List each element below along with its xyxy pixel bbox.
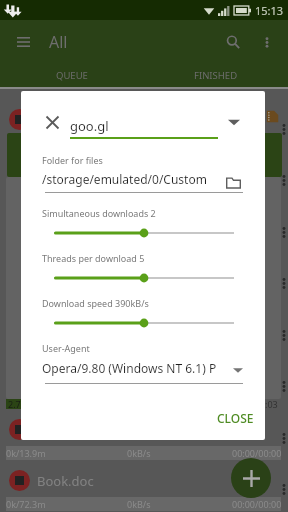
staticText: Download speed 390kB/s xyxy=(42,297,149,309)
staticText: QUEUE xyxy=(56,69,88,82)
button[interactable]: Stop download xyxy=(9,470,30,491)
button[interactable] xyxy=(54,272,234,284)
staticText: 0kB/s xyxy=(127,498,151,510)
button[interactable]: Item menu xyxy=(279,378,288,394)
staticText: 2.7m xyxy=(8,398,30,410)
button[interactable]: Item menu xyxy=(279,275,288,291)
staticText: User-Agent xyxy=(42,342,90,354)
button[interactable]: History xyxy=(226,114,242,130)
button[interactable] xyxy=(6,177,281,399)
staticText: FINISHED xyxy=(194,69,238,82)
button[interactable] xyxy=(7,133,282,177)
staticText: /storage/emulated/0/Custom xyxy=(42,171,222,187)
button[interactable]: QUEUE xyxy=(0,64,144,87)
staticText: :03 xyxy=(265,398,278,410)
staticText: 00:00/00:00 xyxy=(232,498,282,510)
staticText: 00:00/00:00 xyxy=(232,447,282,459)
button[interactable]: FINISHED xyxy=(144,64,288,87)
button[interactable]: Menu xyxy=(8,27,38,57)
staticText: 15:13 xyxy=(255,3,284,18)
button[interactable]: Item menu xyxy=(279,430,288,446)
button[interactable] xyxy=(54,227,234,239)
staticText: All xyxy=(49,31,68,53)
button[interactable]: Clear xyxy=(42,112,62,132)
staticText: Opera/9.80 (Windows NT 6.1) P xyxy=(42,360,228,376)
button[interactable]: Item menu xyxy=(279,121,288,137)
staticText: 0k/13.9m xyxy=(6,447,46,459)
button[interactable]: Item menu xyxy=(279,224,288,240)
button[interactable]: Search xyxy=(218,27,248,57)
staticText: Simultaneous downloads 2 xyxy=(42,207,156,219)
staticText: Folder for files xyxy=(42,154,103,166)
staticText: 0kB/s xyxy=(127,447,151,459)
button[interactable]: Item menu xyxy=(279,327,288,343)
button[interactable]: Add download xyxy=(231,458,271,498)
button[interactable]: Item menu xyxy=(279,481,288,497)
button[interactable]: More options xyxy=(252,27,282,57)
button[interactable]: Stop download xyxy=(9,109,30,130)
button[interactable]: Stop download xyxy=(9,419,30,440)
button[interactable]: Choose folder xyxy=(224,173,242,191)
staticText: goo.gl xyxy=(70,117,109,135)
staticText: Threads per download 5 xyxy=(42,252,145,264)
button[interactable]: Report.txt xyxy=(37,421,252,439)
staticText: CLOSE xyxy=(217,410,254,426)
button[interactable]: Book.doc xyxy=(37,472,252,490)
button[interactable] xyxy=(54,317,234,329)
button[interactable]: CLOSE xyxy=(209,403,262,433)
button[interactable]: Item menu xyxy=(279,172,288,188)
button[interactable]: Choose user agent xyxy=(232,364,244,376)
staticText: 0k/72.3m xyxy=(6,498,46,510)
